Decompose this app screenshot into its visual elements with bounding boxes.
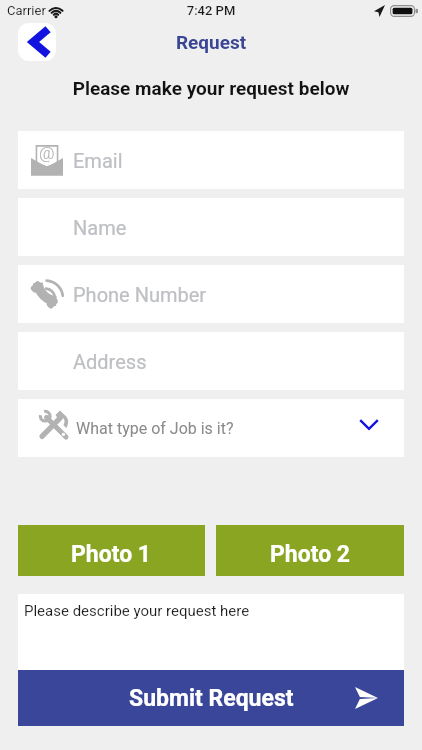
staticText: What type of Job is it?	[76, 419, 234, 438]
staticText: Address	[73, 350, 147, 373]
staticText: Phone Number	[73, 283, 207, 306]
staticText: Photo 2	[270, 541, 351, 568]
button[interactable]: Phone Number	[18, 265, 404, 323]
staticText: Please describe your request here	[24, 602, 250, 620]
button[interactable]: Name	[18, 198, 404, 256]
staticText: Name	[73, 216, 127, 239]
staticText: Email	[73, 149, 123, 172]
button[interactable]: Photo 1	[18, 525, 205, 576]
staticText: @	[39, 143, 55, 163]
staticText: Submit Request	[129, 685, 294, 712]
button[interactable]: @	[18, 131, 404, 189]
button[interactable]: Please describe your request here	[18, 594, 404, 670]
button[interactable]: Photo 2	[216, 525, 404, 576]
button[interactable]: Back	[18, 23, 56, 61]
staticText: 7:42 PM	[0, 3, 422, 18]
staticText: Carrier	[7, 3, 46, 18]
staticText: Request	[0, 31, 422, 53]
staticText: Please make your request below	[0, 77, 422, 99]
button[interactable]: Submit Request	[18, 670, 404, 726]
button[interactable]: Address	[18, 332, 404, 390]
button[interactable]: What type of Job is it?	[18, 399, 404, 457]
staticText: Photo 1	[71, 541, 152, 568]
